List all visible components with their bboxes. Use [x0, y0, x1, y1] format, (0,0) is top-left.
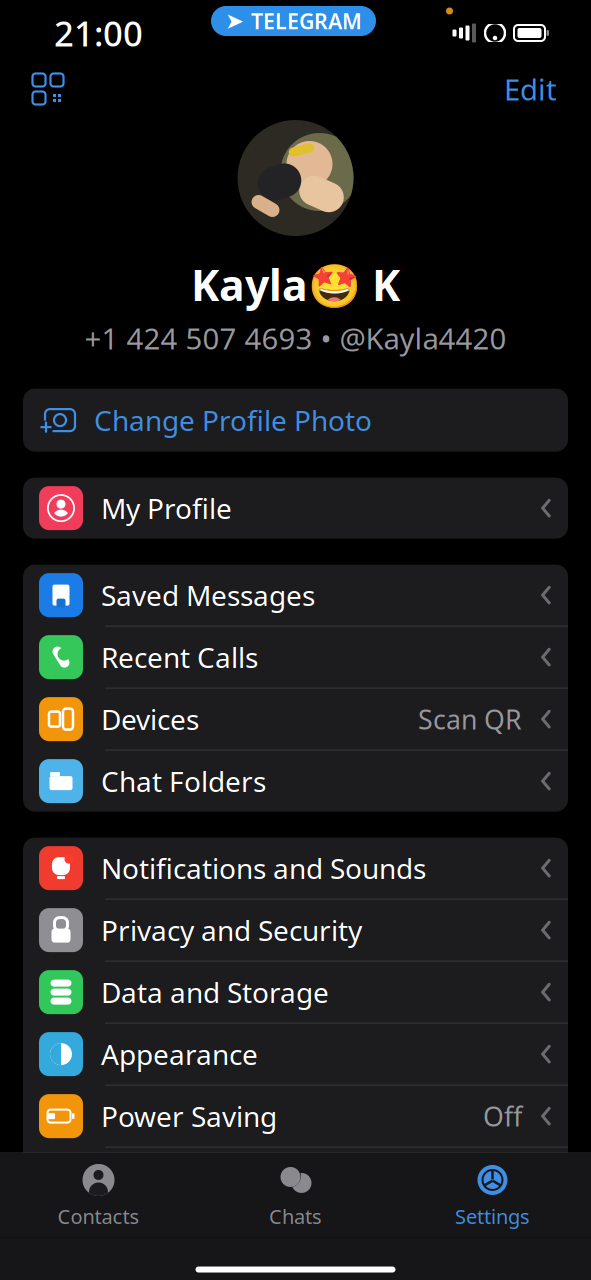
button[interactable]: Profile photo — [237, 120, 353, 236]
staticText: Chats — [269, 1203, 322, 1230]
button[interactable]: Devices — [23, 689, 568, 751]
button[interactable]: Power Saving — [23, 1086, 568, 1148]
staticText: My Profile — [101, 489, 232, 527]
button[interactable]: Chats — [197, 1153, 394, 1238]
staticText: TELEGRAM — [251, 7, 362, 35]
button[interactable]: Edit — [496, 63, 565, 114]
staticText: Change Profile Photo — [94, 401, 372, 439]
button[interactable]: Change Profile Photo — [23, 389, 568, 452]
button[interactable]: Notifications and Sounds — [23, 838, 568, 900]
staticText: Chat Folders — [101, 762, 266, 800]
button[interactable]: My Profile — [23, 478, 568, 539]
button[interactable]: Scan QR code — [28, 69, 68, 109]
staticText: Notifications and Sounds — [101, 849, 426, 887]
staticText: Settings — [455, 1203, 530, 1230]
button[interactable]: Data and Storage — [23, 962, 568, 1024]
staticText: Devices — [101, 700, 199, 738]
staticText: ➤ — [225, 8, 244, 34]
staticText: Data and Storage — [101, 973, 329, 1011]
staticText: Recent Calls — [101, 638, 258, 676]
staticText: Privacy and Security — [101, 911, 362, 949]
staticText: Power Saving — [101, 1097, 277, 1135]
button[interactable]: Chat Folders — [23, 751, 568, 812]
staticText: Language — [101, 1159, 232, 1197]
button[interactable]: Language — [23, 1148, 568, 1209]
button[interactable]: Saved Messages — [23, 565, 568, 627]
staticText: Appearance — [101, 1035, 258, 1073]
staticText: Saved Messages — [101, 576, 315, 614]
staticText: English — [432, 1160, 522, 1196]
staticText: Scan QR — [418, 701, 522, 737]
button[interactable]: Contacts — [0, 1153, 197, 1238]
staticText: Kayla🤩 K — [191, 256, 400, 313]
staticText: Edit — [504, 69, 557, 108]
button[interactable]: Settings — [394, 1153, 591, 1238]
staticText: Contacts — [57, 1203, 139, 1230]
button[interactable]: Recent Calls — [23, 627, 568, 689]
staticText: +1 424 507 4693 • @Kayla4420 — [84, 319, 506, 358]
button[interactable]: Appearance — [23, 1024, 568, 1086]
button[interactable]: Privacy and Security — [23, 900, 568, 962]
staticText: 21:00 — [54, 10, 143, 56]
staticText: Off — [483, 1098, 522, 1134]
